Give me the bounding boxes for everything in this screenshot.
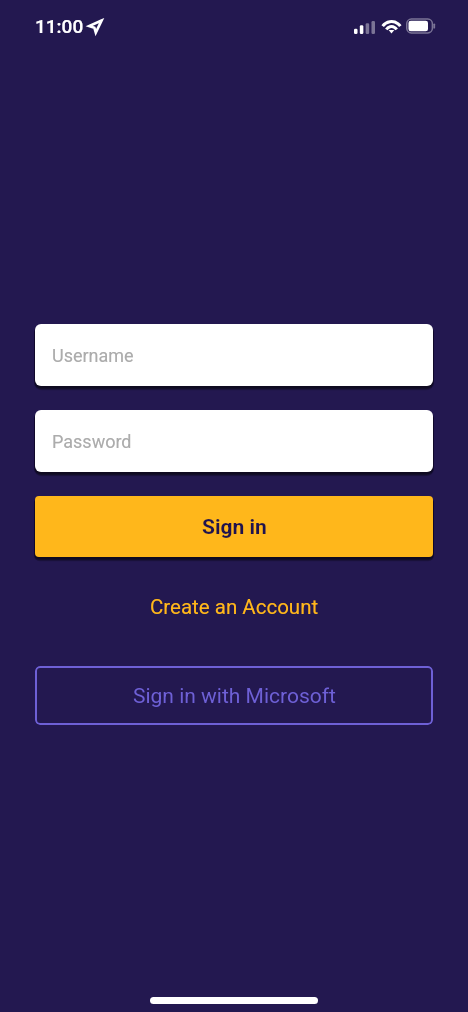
- other: Location: [87, 18, 103, 35]
- button[interactable]: Sign in with Microsoft: [35, 666, 433, 725]
- other: Cellular signal: [354, 21, 375, 34]
- staticText: Sign in with Microsoft: [133, 684, 336, 709]
- other: Wi-Fi: [382, 18, 401, 33]
- other: Battery: [406, 18, 436, 34]
- button[interactable]: Password: [35, 410, 433, 472]
- button[interactable]: Sign in: [35, 496, 433, 557]
- staticText: Username: [52, 345, 134, 366]
- button[interactable]: Create an Account: [35, 583, 433, 627]
- staticText: Sign in: [202, 515, 267, 540]
- staticText: 11:00: [35, 15, 84, 37]
- staticText: Password: [52, 431, 132, 452]
- staticText: Create an Account: [150, 595, 319, 619]
- button[interactable]: Username: [35, 324, 433, 386]
